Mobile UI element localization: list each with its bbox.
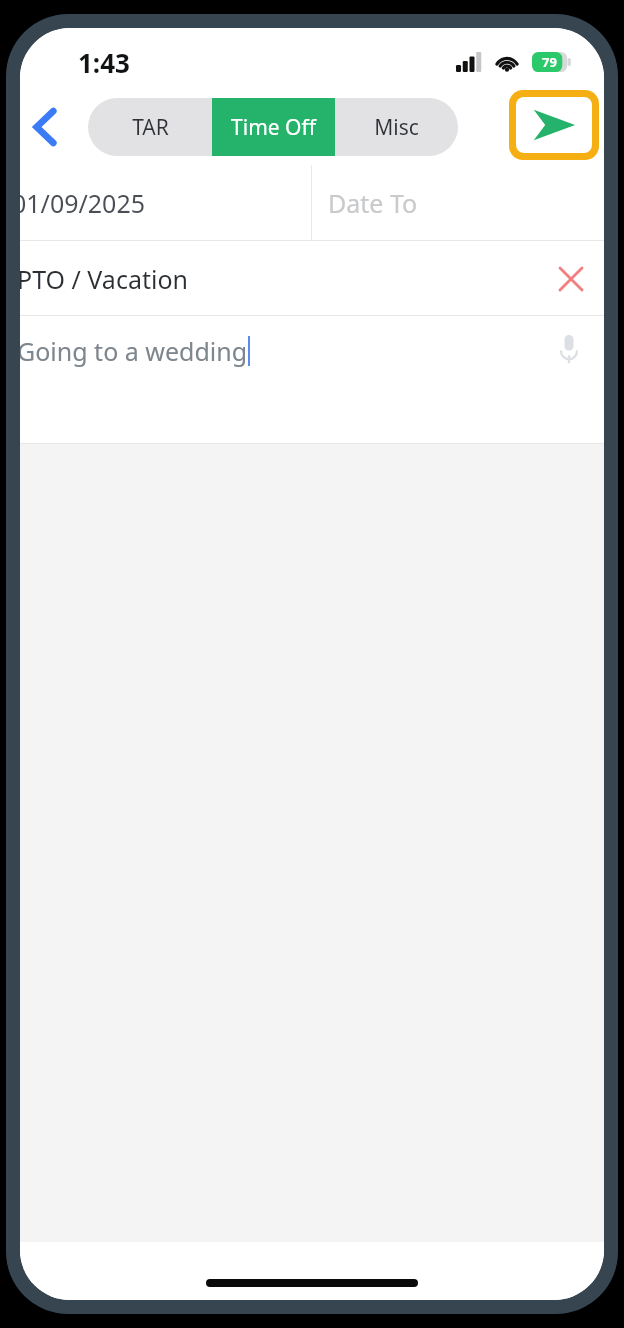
staticText: 79 [542,53,557,71]
button[interactable]: Send [516,97,592,153]
staticText: Going to a wedding [20,334,248,368]
button[interactable]: PTO / Vacation [20,241,604,316]
staticText: 1:43 [78,45,130,80]
staticText: 01/09/2025 [20,186,146,220]
button[interactable]: Date To [312,165,604,241]
button[interactable]: Clear [546,254,596,304]
button[interactable]: Time Off [212,98,335,156]
button[interactable]: TAR [88,98,212,156]
staticText: Date To [328,186,418,220]
button[interactable]: Back [20,100,72,154]
button[interactable]: Going to a wedding [20,316,604,444]
staticText: Time Off [231,113,316,142]
staticText: TAR [132,113,169,142]
button[interactable]: Misc [335,98,458,156]
button[interactable]: Voice input [544,324,594,374]
staticText: Misc [374,113,419,142]
staticText: PTO / Vacation [20,262,188,296]
button[interactable]: 01/09/2025 [20,165,311,241]
